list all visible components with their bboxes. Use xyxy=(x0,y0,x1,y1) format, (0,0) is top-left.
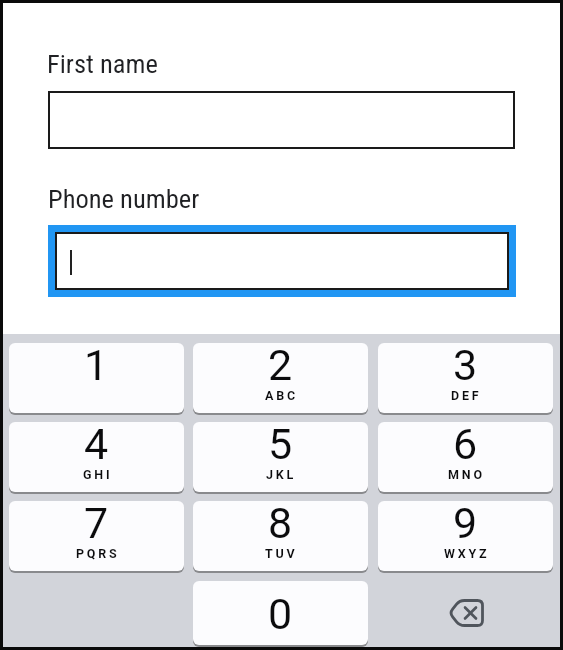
staticText: 3 xyxy=(453,340,478,390)
staticText: TUV xyxy=(265,546,298,561)
staticText: GHI xyxy=(83,467,113,482)
staticText: 7 xyxy=(84,498,109,548)
staticText: PQRS xyxy=(76,546,120,561)
button[interactable]: 3 xyxy=(378,343,553,413)
button[interactable] xyxy=(378,581,553,645)
button[interactable]: 2 xyxy=(193,343,368,413)
button[interactable] xyxy=(48,91,515,149)
button[interactable]: 1 xyxy=(9,343,184,413)
staticText: Phone number xyxy=(48,183,200,214)
staticText: First name xyxy=(47,48,158,79)
staticText: WXYZ xyxy=(444,546,490,561)
button[interactable]: 6 xyxy=(378,422,553,492)
staticText: 9 xyxy=(453,498,478,548)
staticText: 2 xyxy=(268,340,293,390)
staticText: DEF xyxy=(451,388,482,403)
staticText: 8 xyxy=(268,498,293,548)
staticText: 0 xyxy=(268,589,293,639)
staticText: 1 xyxy=(84,340,109,390)
staticText: 5 xyxy=(268,419,293,469)
button[interactable]: 8 xyxy=(193,501,368,571)
button[interactable]: 9 xyxy=(378,501,553,571)
button[interactable]: 0 xyxy=(193,581,368,645)
staticText: 4 xyxy=(84,419,109,469)
button[interactable]: 5 xyxy=(193,422,368,492)
staticText: MNO xyxy=(448,467,485,482)
staticText: ABC xyxy=(265,388,298,403)
button[interactable]: 4 xyxy=(9,422,184,492)
button[interactable]: 7 xyxy=(9,501,184,571)
button[interactable] xyxy=(48,225,516,297)
staticText: JKL xyxy=(266,467,297,482)
staticText: 6 xyxy=(453,419,478,469)
